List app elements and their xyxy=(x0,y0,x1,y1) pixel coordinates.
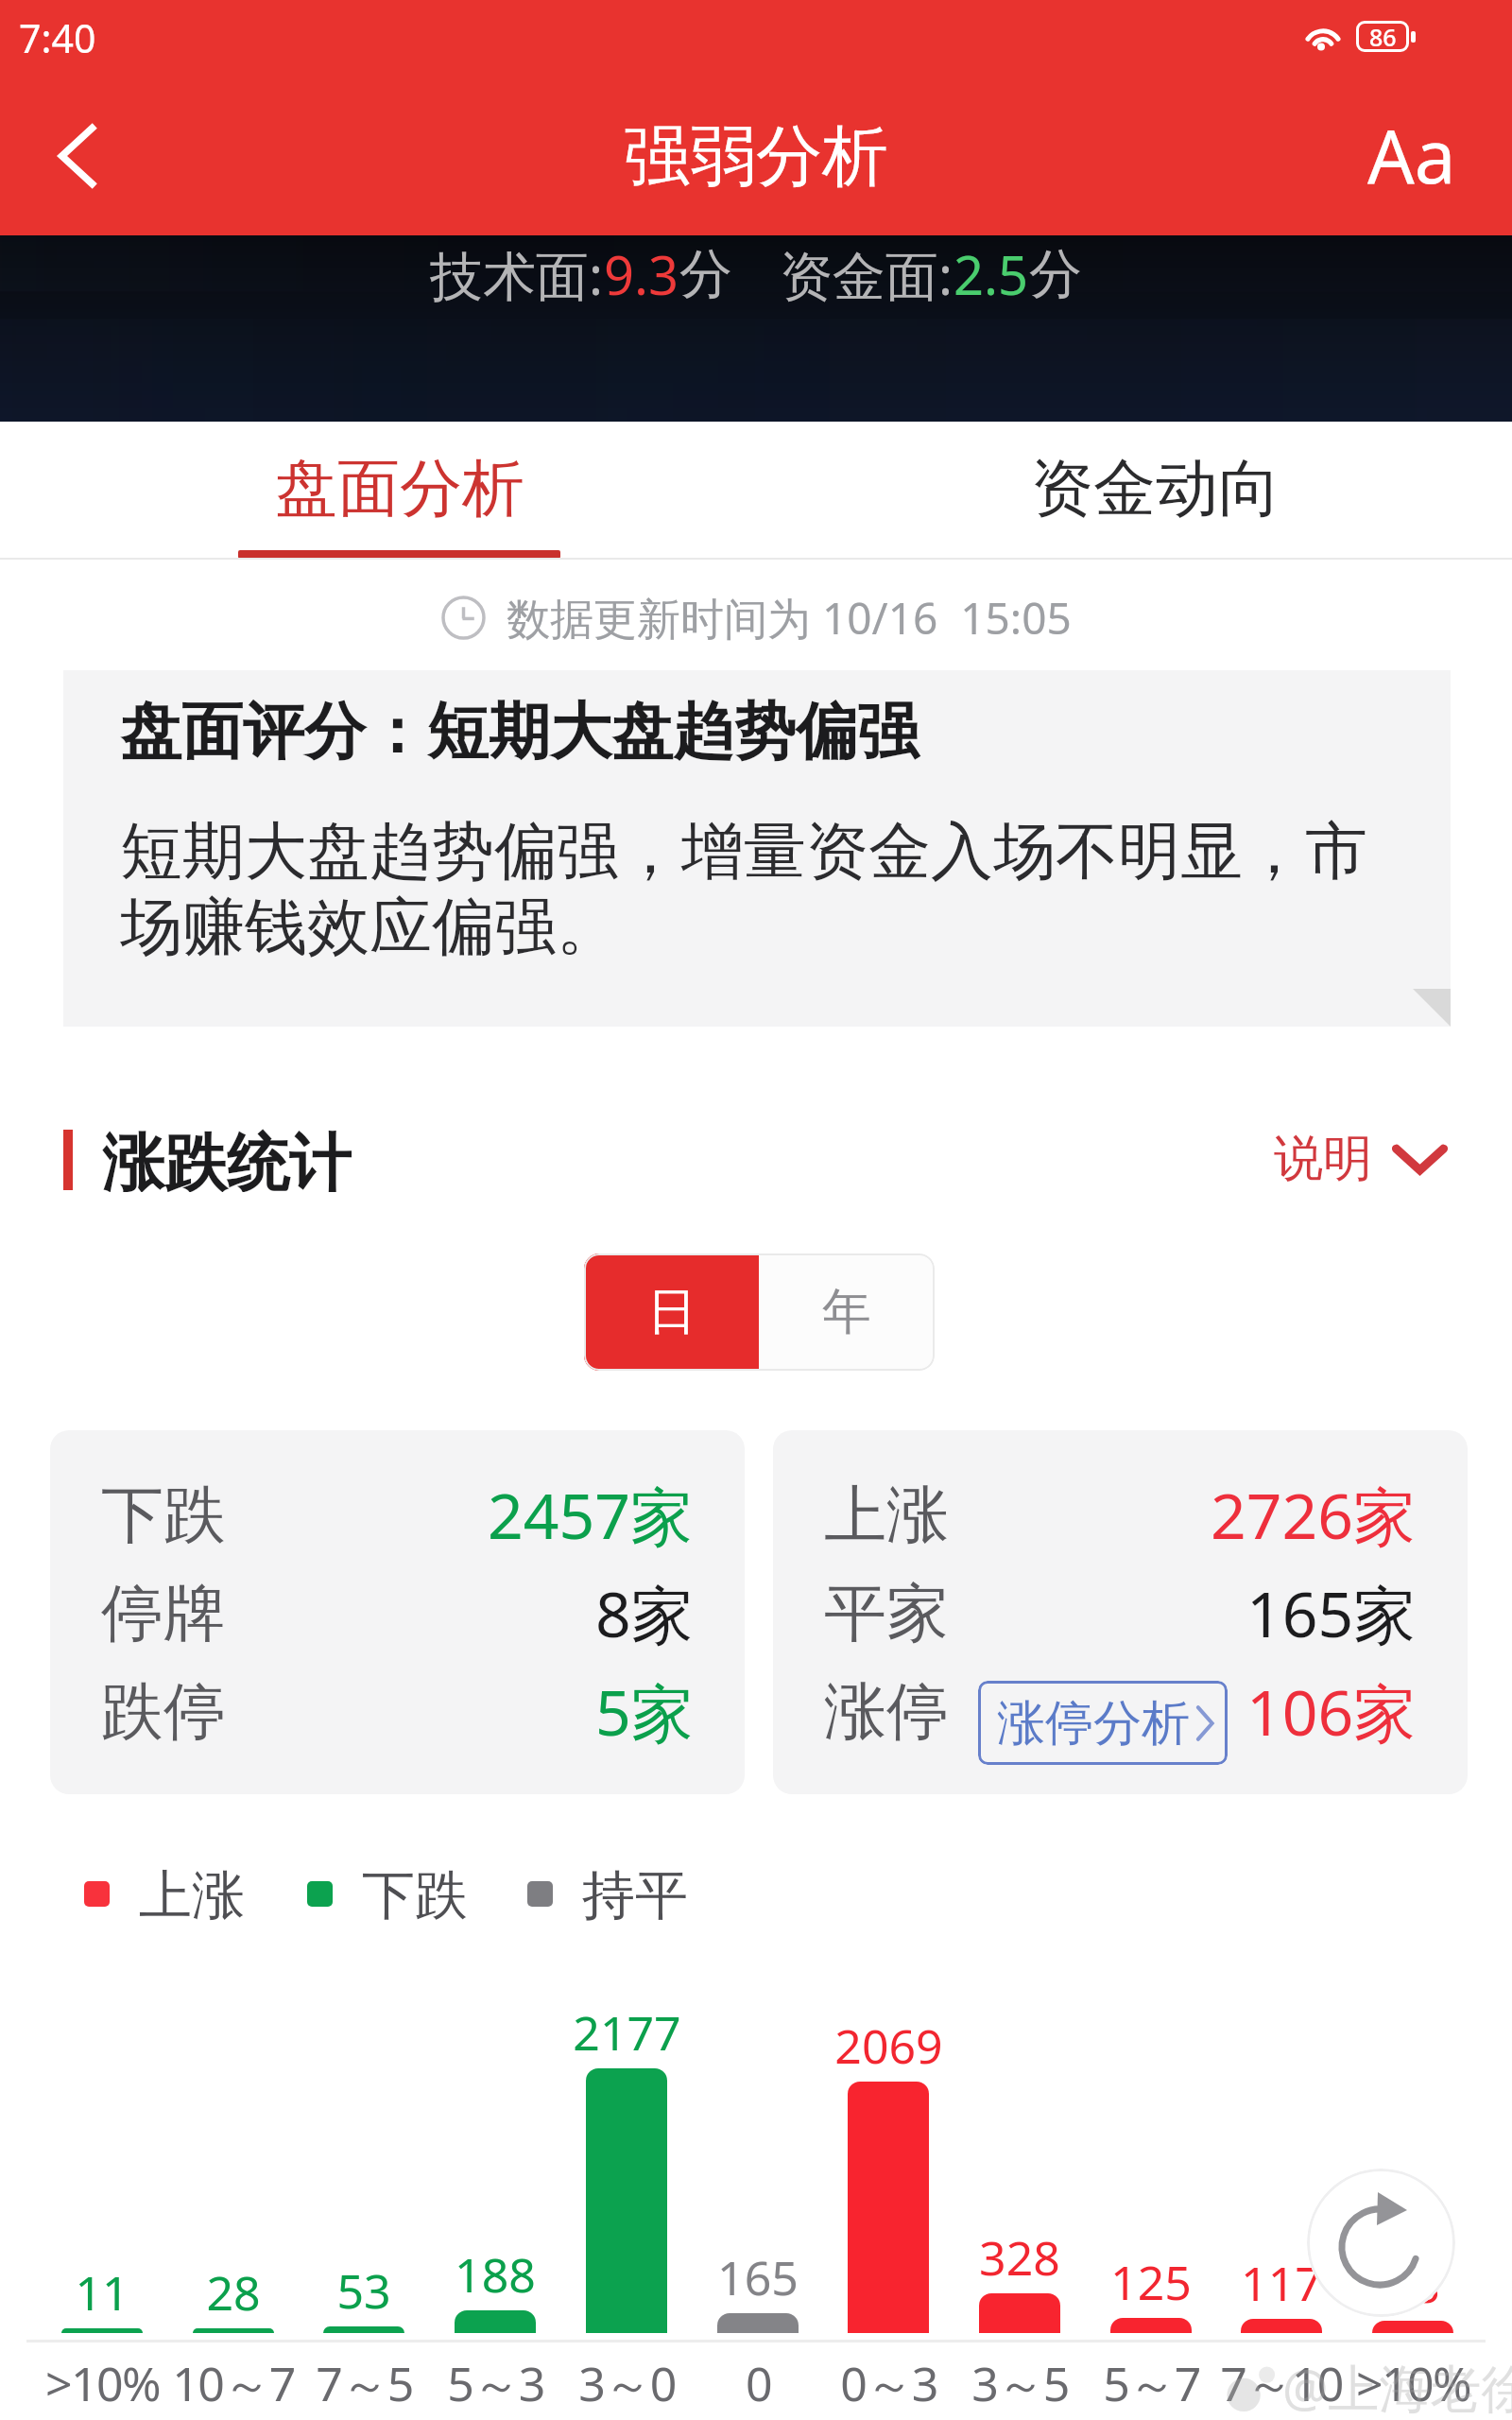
staticText: 0～3 xyxy=(840,2351,937,2415)
button[interactable]: 说明 xyxy=(1274,1128,1447,1190)
staticText: 2177 xyxy=(573,2000,681,2065)
button[interactable]: 资金动向 xyxy=(967,422,1345,560)
staticText: 2457家 xyxy=(488,1472,694,1557)
staticText: 11 xyxy=(75,2260,129,2325)
staticText: 2069 xyxy=(834,2014,943,2078)
staticText: 7～5 xyxy=(316,2351,413,2415)
staticText: 3～5 xyxy=(971,2351,1069,2415)
staticText: 188 xyxy=(455,2242,536,2307)
staticText: 日 xyxy=(647,1281,696,1343)
staticText: 5～7 xyxy=(1103,2351,1200,2415)
button[interactable]: Back xyxy=(8,87,146,225)
staticText: 5家 xyxy=(595,1668,694,1754)
staticText: 165家 xyxy=(1246,1570,1417,1655)
staticText: 平家 xyxy=(824,1574,949,1652)
staticText: 技术面: xyxy=(430,238,604,310)
staticText: 涨停分析 xyxy=(997,1693,1190,1754)
staticText: 125 xyxy=(1110,2250,1192,2314)
button[interactable]: 涨停分析 xyxy=(978,1681,1228,1765)
staticText: 117 xyxy=(1241,2251,1322,2315)
staticText: 盘面评分：短期大盘趋势偏强 xyxy=(120,693,919,770)
staticText: 数据更新时间为 10/16 15:05 xyxy=(507,588,1072,648)
button[interactable]: Refresh xyxy=(1307,2169,1455,2317)
staticText: 9.3 xyxy=(604,238,679,310)
staticText: 10～7 xyxy=(172,2351,295,2415)
staticText: @上海老徐1 xyxy=(1282,2352,1512,2420)
staticText: 8家 xyxy=(595,1570,694,1655)
button[interactable]: 日 xyxy=(584,1253,759,1371)
staticText: 短期大盘趋势偏强，增量资金入场不明显，市场赚钱效应偏强。 xyxy=(120,812,1417,966)
staticText: 106家 xyxy=(1246,1668,1417,1754)
button[interactable]: 年 xyxy=(759,1253,935,1371)
button[interactable]: 盘面分析 xyxy=(210,422,588,560)
staticText: 上涨 xyxy=(824,1476,949,1554)
staticText: Aa xyxy=(1367,105,1456,205)
staticText: 下跌 xyxy=(101,1476,226,1554)
staticText: 53 xyxy=(336,2258,391,2323)
staticText: 86 xyxy=(1369,21,1397,52)
staticText: 0 xyxy=(746,2351,771,2415)
staticText: 上涨 xyxy=(139,1862,245,1925)
staticText: 7:40 xyxy=(19,11,96,64)
staticText: 强弱分析 xyxy=(624,115,888,199)
staticText: >10% xyxy=(1356,2351,1470,2415)
staticText: 资金动向 xyxy=(1031,449,1280,527)
staticText: 分 xyxy=(1029,241,1082,308)
staticText: 下跌 xyxy=(362,1862,468,1925)
staticText: 98 xyxy=(1385,2253,1440,2317)
staticText: 2726家 xyxy=(1211,1472,1417,1557)
staticText: 年 xyxy=(822,1281,871,1343)
staticText: >10% xyxy=(45,2351,160,2415)
staticText: 2.5 xyxy=(954,238,1029,310)
staticText: 涨跌统计 xyxy=(102,1124,352,1192)
staticText: 持平 xyxy=(582,1862,688,1925)
staticText: 分 xyxy=(679,241,732,308)
staticText: 165 xyxy=(717,2245,799,2309)
staticText: 3～0 xyxy=(578,2351,676,2415)
staticText: 5～3 xyxy=(447,2351,544,2415)
staticText: 停牌 xyxy=(101,1574,226,1652)
staticText: 28 xyxy=(206,2260,261,2325)
staticText: 盘面分析 xyxy=(275,449,524,527)
staticText: 涨停 xyxy=(824,1672,949,1751)
staticText: 跌停 xyxy=(101,1672,226,1751)
staticText: 328 xyxy=(979,2225,1060,2290)
staticText: 说明 xyxy=(1274,1128,1372,1190)
staticText: 7～10 xyxy=(1220,2351,1343,2415)
button[interactable]: Font size xyxy=(1343,87,1481,225)
staticText: 资金面: xyxy=(780,238,954,310)
